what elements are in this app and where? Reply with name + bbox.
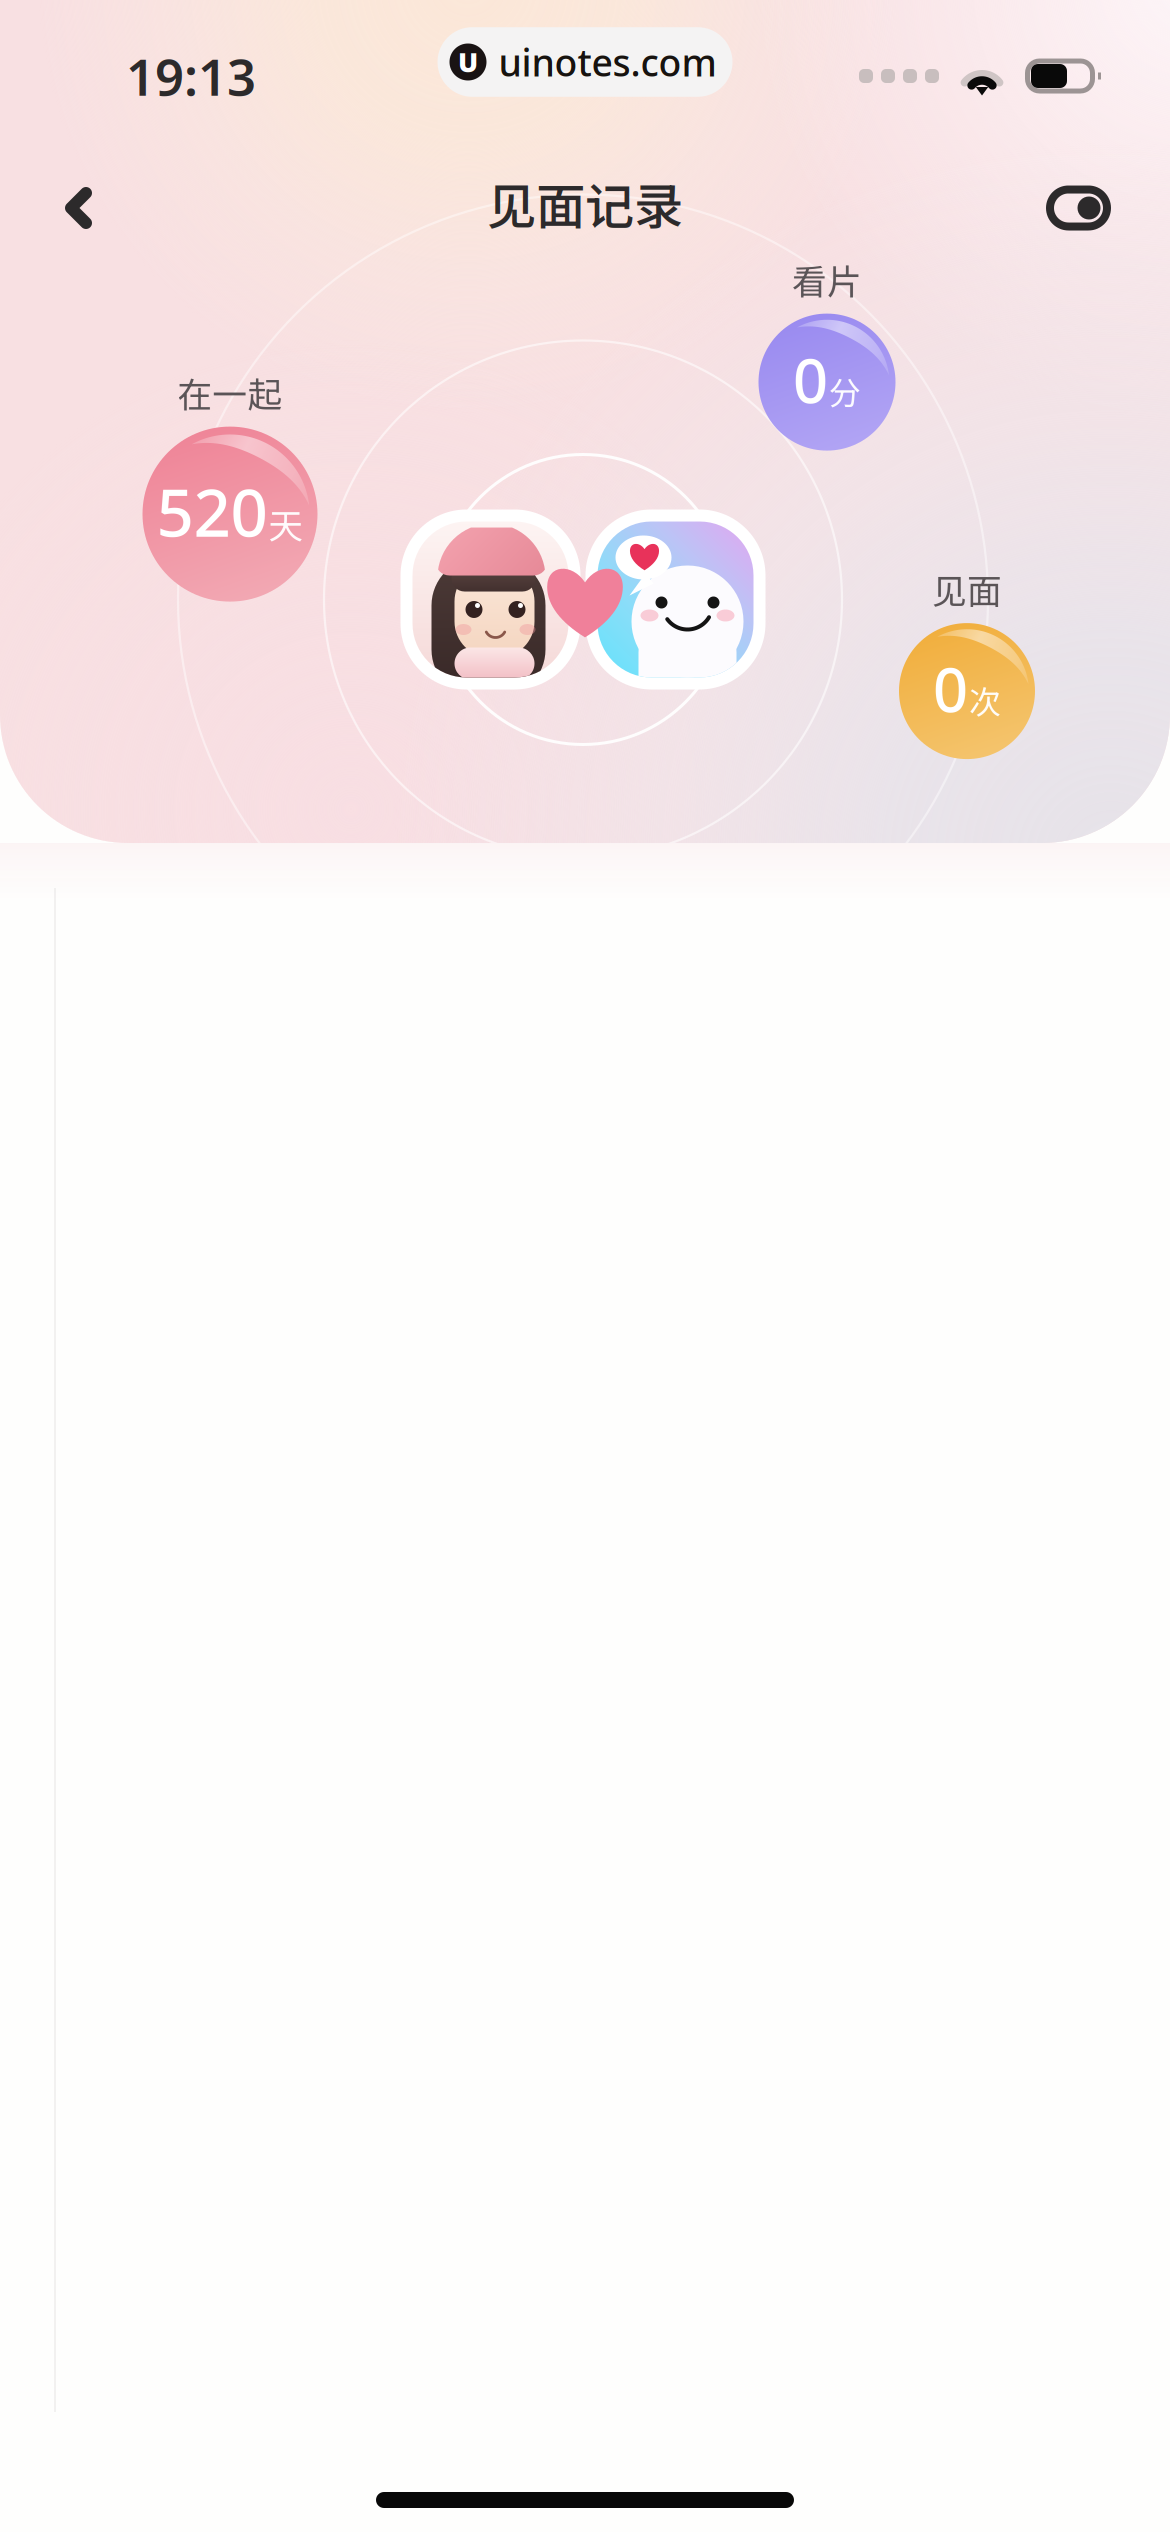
staticText: U bbox=[458, 44, 478, 80]
staticText: 0 bbox=[933, 648, 968, 729]
staticText: 在一起 bbox=[177, 367, 282, 418]
staticText: 看片 bbox=[792, 254, 862, 305]
staticText: 520 bbox=[156, 468, 267, 555]
staticText: 19:13 bbox=[126, 42, 256, 110]
staticText: 见面 bbox=[932, 564, 1002, 614]
button[interactable]: Back bbox=[42, 163, 115, 253]
staticText: 天 bbox=[268, 499, 303, 549]
staticText: 分 bbox=[829, 368, 861, 414]
staticText: 见面记录 bbox=[487, 167, 683, 239]
staticText: 次 bbox=[969, 677, 1001, 723]
staticText: 0 bbox=[793, 339, 828, 420]
staticText: uinotes.com bbox=[498, 37, 716, 87]
button[interactable]: Toggle visibility bbox=[1029, 163, 1128, 252]
